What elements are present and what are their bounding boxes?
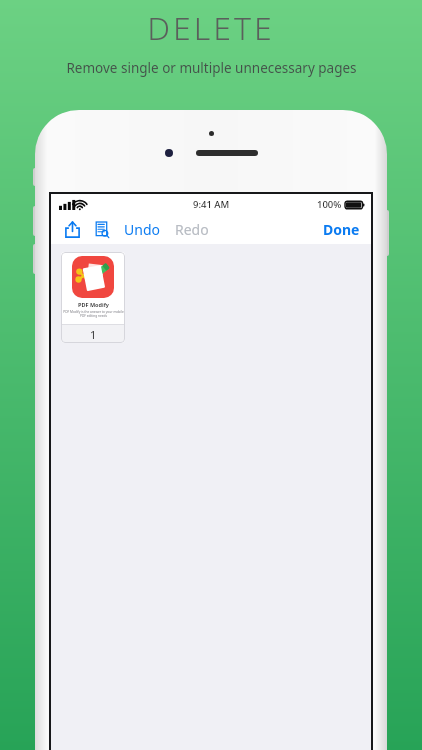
staticText: PDF Modify is the answer to your mobile … [63, 310, 124, 318]
staticText: Remove single or multiple unnecessary pa… [66, 59, 357, 77]
staticText: PDF Modify [78, 301, 109, 308]
button[interactable]: Redo [172, 217, 212, 242]
button[interactable]: Undo [121, 217, 163, 242]
staticText: Redo [175, 220, 209, 239]
button[interactable]: PDF Modify [61, 252, 125, 343]
staticText: 100% [317, 198, 342, 211]
staticText: 9:41 AM [193, 198, 230, 211]
staticText: 1 [90, 327, 97, 342]
staticText: DELETE [147, 6, 275, 50]
staticText: Undo [124, 220, 160, 239]
button[interactable]: Share [59, 216, 85, 242]
staticText: Done [323, 220, 360, 239]
button[interactable]: Done [320, 217, 363, 242]
button[interactable]: Document preview [89, 216, 115, 242]
